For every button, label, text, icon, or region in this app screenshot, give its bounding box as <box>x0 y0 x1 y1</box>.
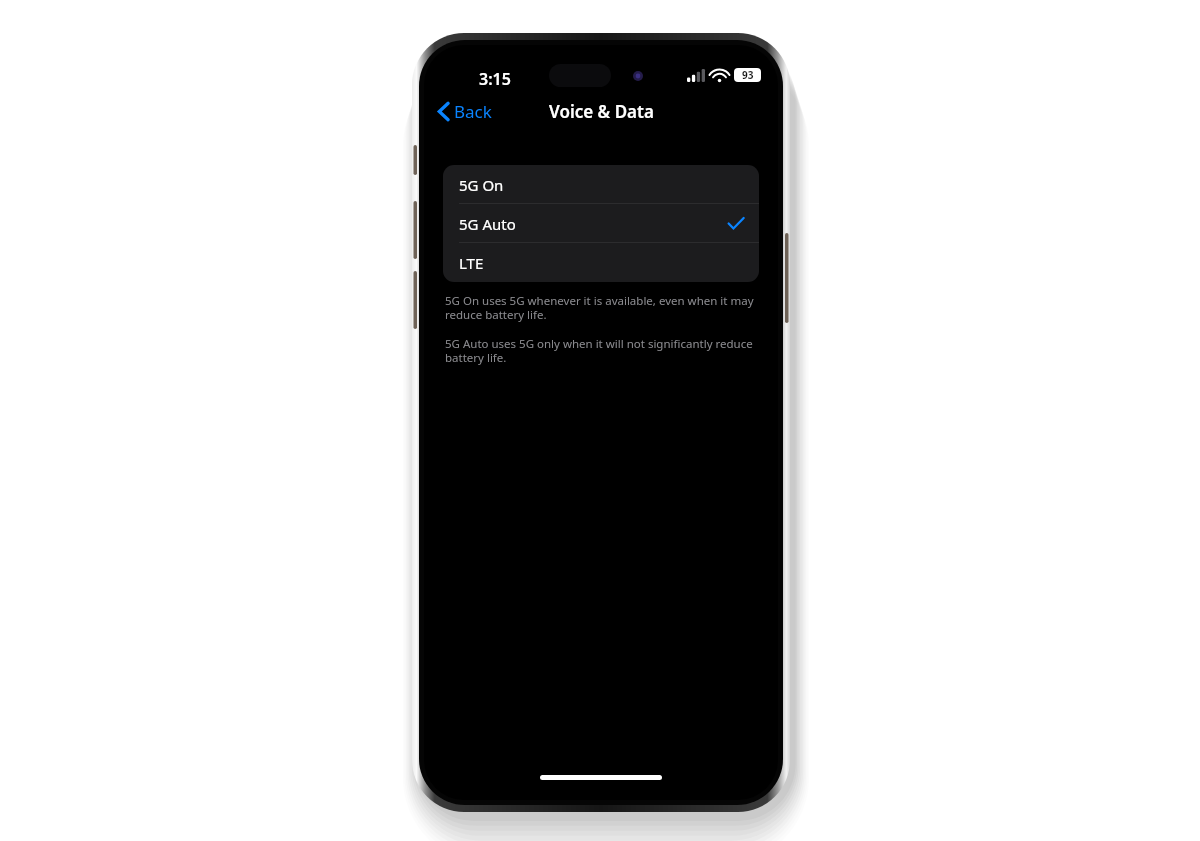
staticText: 3:15 <box>479 68 511 90</box>
button[interactable]: 5G Auto <box>443 204 759 243</box>
button[interactable]: Back <box>432 94 498 129</box>
staticText: 5G Auto <box>459 214 516 234</box>
staticText: 93 <box>742 68 754 82</box>
staticText: 5G Auto uses 5G only when it will not si… <box>445 336 757 366</box>
staticText: Voice & Data <box>549 100 654 123</box>
staticText: Back <box>454 100 492 123</box>
button[interactable]: LTE <box>443 243 759 282</box>
staticText: LTE <box>459 253 484 273</box>
staticText: 5G On <box>459 175 504 195</box>
button[interactable]: 5G On <box>443 165 759 204</box>
staticText: 5G On uses 5G whenever it is available, … <box>445 293 757 323</box>
